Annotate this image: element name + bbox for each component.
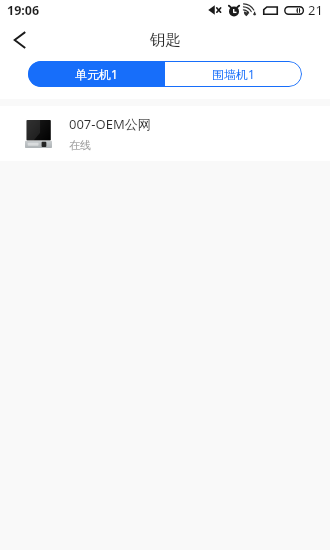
button[interactable]: 围墙机1 [165,61,302,87]
staticText: 007-OEM公网 [69,115,151,133]
staticText: 在线 [69,138,91,152]
button[interactable]: Back [0,21,40,61]
button[interactable]: 单元机1 [28,61,165,87]
staticText: 19:06 [7,2,40,19]
staticText: 21 [308,1,323,19]
staticText: 单元机1 [75,66,118,82]
staticText: 围墙机1 [212,66,255,82]
button[interactable]: 007-OEM公网 [0,106,330,161]
staticText: 钥匙 [150,30,181,50]
